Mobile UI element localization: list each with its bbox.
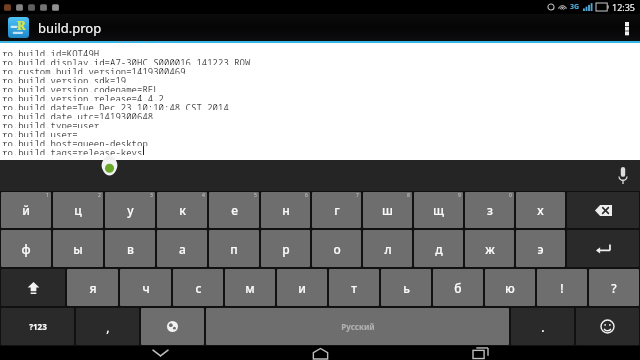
button[interactable]: .: [511, 308, 574, 345]
staticText: 5: [254, 192, 257, 199]
button[interactable]: Русский: [206, 308, 509, 345]
staticText: ?123: [29, 321, 47, 332]
button[interactable]: б: [433, 269, 483, 306]
button[interactable]: р: [261, 230, 310, 267]
staticText: й: [22, 202, 30, 218]
button[interactable]: ш: [363, 192, 412, 228]
staticText: ы: [73, 241, 83, 257]
button[interactable]: ф: [1, 230, 51, 267]
button[interactable]: в: [105, 230, 155, 267]
staticText: 8: [407, 192, 410, 199]
staticText: ro.build.version.sdk=19: [2, 74, 127, 83]
staticText: ж: [485, 241, 495, 257]
staticText: и: [298, 280, 306, 296]
staticText: ,: [106, 319, 110, 335]
staticText: 3G: [570, 2, 580, 12]
button[interactable]: щ: [414, 192, 463, 228]
staticText: 4: [202, 192, 205, 199]
button[interactable]: а: [157, 230, 207, 267]
button[interactable]: ж: [465, 230, 514, 267]
button[interactable]: с: [173, 269, 223, 306]
staticText: у: [127, 202, 134, 218]
button[interactable]: ,: [76, 308, 139, 345]
button[interactable]: Backspace: [567, 192, 639, 228]
staticText: 7: [356, 192, 359, 199]
button[interactable]: ?: [589, 269, 639, 306]
staticText: ф: [21, 241, 31, 257]
staticText: в: [127, 241, 134, 257]
button[interactable]: ы: [53, 230, 103, 267]
staticText: ro.build.date.utc=1419300648: [2, 110, 154, 119]
button[interactable]: э: [516, 230, 565, 267]
button[interactable]: т: [329, 269, 379, 306]
staticText: х: [537, 202, 544, 218]
staticText: Русский: [341, 321, 375, 332]
staticText: б: [454, 280, 462, 296]
staticText: щ: [433, 202, 444, 218]
staticText: ч: [142, 280, 150, 296]
staticText: ro.build.user=: [2, 128, 78, 137]
staticText: ro.build.version.codename=REL: [2, 83, 159, 92]
staticText: ь: [403, 280, 410, 296]
staticText: 3: [150, 192, 153, 199]
staticText: ю: [505, 280, 515, 296]
staticText: н: [282, 202, 290, 218]
staticText: к: [179, 202, 186, 218]
button[interactable]: д: [414, 230, 463, 267]
staticText: R: [17, 17, 26, 33]
staticText: м: [245, 280, 255, 296]
staticText: ro.build.host=queen-desktop: [2, 137, 148, 146]
button[interactable]: х: [516, 192, 565, 228]
staticText: # autogenerated by buildinfo.sh: [2, 38, 170, 42]
staticText: г: [334, 202, 340, 218]
staticText: с: [195, 280, 202, 296]
button[interactable]: п: [209, 230, 259, 267]
staticText: !: [560, 280, 564, 296]
staticText: ro.build.id=KOT49H: [2, 47, 100, 56]
staticText: ro.build.version.release=4.4.2: [2, 92, 165, 101]
button[interactable]: н: [261, 192, 310, 228]
staticText: 9: [458, 192, 461, 199]
button[interactable]: Emoji: [576, 308, 639, 345]
staticText: ro.build.date=Tue Dec 23 10:10:48 CST 20…: [2, 101, 229, 110]
staticText: п: [230, 241, 238, 257]
staticText: 1: [46, 192, 49, 199]
button[interactable]: Home: [270, 346, 370, 360]
button[interactable]: у: [105, 192, 155, 228]
staticText: 0: [509, 192, 512, 199]
staticText: 6: [305, 192, 308, 199]
button[interactable]: з: [465, 192, 514, 228]
button[interactable]: и: [277, 269, 327, 306]
button[interactable]: м: [225, 269, 275, 306]
button[interactable]: Voice input: [606, 160, 640, 191]
staticText: ro.build.tags=release-keys: [2, 146, 143, 155]
button[interactable]: # autogenerated by buildinfo.sh: [0, 43, 640, 160]
button[interactable]: ?123: [1, 308, 74, 345]
button[interactable]: е: [209, 192, 259, 228]
button[interactable]: л: [363, 230, 412, 267]
button[interactable]: ч: [120, 269, 171, 306]
button[interactable]: Change language: [141, 308, 204, 345]
button[interactable]: Hide keyboard: [110, 346, 210, 360]
button[interactable]: More options: [614, 14, 640, 41]
button[interactable]: !: [537, 269, 587, 306]
button[interactable]: ц: [53, 192, 103, 228]
button[interactable]: я: [67, 269, 118, 306]
staticText: р: [282, 241, 290, 257]
staticText: ro.build.display.id=A7-30HC_S000016_1412…: [2, 56, 251, 65]
button[interactable]: к: [157, 192, 207, 228]
button[interactable]: Recent apps: [430, 346, 530, 360]
button[interactable]: й: [1, 192, 51, 228]
button[interactable]: г: [312, 192, 361, 228]
staticText: э: [537, 241, 544, 257]
staticText: ?: [611, 280, 617, 296]
staticText: з: [487, 202, 493, 218]
staticText: л: [384, 241, 392, 257]
button[interactable]: ю: [485, 269, 535, 306]
button[interactable]: Enter: [567, 230, 639, 267]
staticText: build.prop: [38, 19, 102, 37]
button[interactable]: Shift: [1, 269, 65, 306]
button[interactable]: ь: [381, 269, 431, 306]
staticText: е: [231, 202, 238, 218]
button[interactable]: о: [312, 230, 361, 267]
